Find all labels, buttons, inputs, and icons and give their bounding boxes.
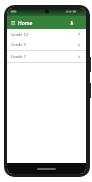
staticText: Grade 7 xyxy=(11,54,26,59)
staticText: Grade 12 xyxy=(11,32,29,37)
staticText: Home xyxy=(18,20,33,27)
button[interactable] xyxy=(68,19,76,26)
button[interactable]: Grade 12 xyxy=(7,29,86,39)
button[interactable] xyxy=(9,20,16,26)
button[interactable]: Grade 9 xyxy=(7,39,86,51)
button[interactable]: Grade 7 xyxy=(7,51,86,63)
staticText: Grade 9 xyxy=(11,42,26,47)
